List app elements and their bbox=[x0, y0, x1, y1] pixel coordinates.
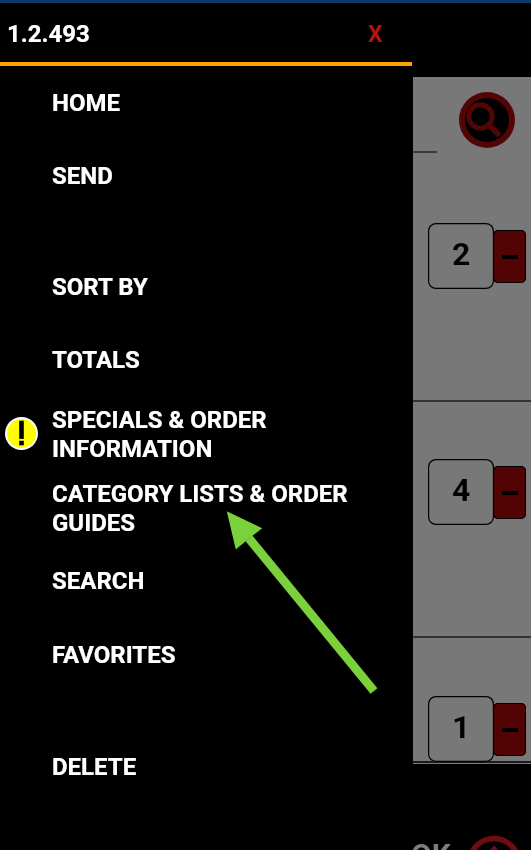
button[interactable]: Decrease quantity bbox=[493, 703, 526, 756]
staticText: SEND bbox=[52, 162, 113, 190]
button[interactable]: CATEGORY LISTS & ORDER GUIDES bbox=[0, 474, 412, 561]
button[interactable]: SPECIALS & ORDER INFORMATION bbox=[0, 400, 412, 474]
button[interactable]: Decrease quantity bbox=[493, 466, 526, 519]
staticText: SORT BY bbox=[52, 273, 148, 301]
staticText: SPECIALS & ORDER INFORMATION bbox=[52, 406, 267, 463]
button[interactable]: Search bbox=[459, 92, 515, 148]
button[interactable]: SEARCH bbox=[0, 561, 412, 635]
staticText: HOME bbox=[52, 89, 121, 117]
staticText: TOTALS bbox=[52, 346, 140, 374]
staticText: FAVORITES bbox=[52, 641, 176, 669]
staticText: CATEGORY LISTS & ORDER GUIDES bbox=[52, 480, 348, 537]
button[interactable]: HOME bbox=[0, 83, 412, 156]
button[interactable]: Close menu bbox=[353, 12, 397, 56]
staticText: OK bbox=[411, 837, 451, 850]
button[interactable]: TOTALS bbox=[0, 340, 412, 400]
staticText: SEARCH bbox=[52, 567, 145, 595]
staticText: 4 bbox=[452, 471, 471, 509]
button[interactable]: SEND bbox=[0, 156, 412, 266]
staticText: 2 bbox=[452, 235, 471, 273]
button[interactable]: DELETE bbox=[0, 747, 412, 821]
staticText: 1 bbox=[452, 708, 471, 746]
button[interactable]: Decrease quantity bbox=[493, 230, 526, 283]
button[interactable]: 4 bbox=[428, 459, 494, 525]
staticText: X bbox=[368, 21, 383, 48]
button[interactable]: 2 bbox=[428, 223, 494, 289]
button[interactable]: FAVORITES bbox=[0, 635, 412, 747]
staticText: DELETE bbox=[52, 753, 137, 781]
staticText: 1.2.493 bbox=[7, 20, 90, 48]
button[interactable]: SORT BY bbox=[0, 267, 412, 340]
button[interactable]: 1 bbox=[428, 696, 494, 762]
